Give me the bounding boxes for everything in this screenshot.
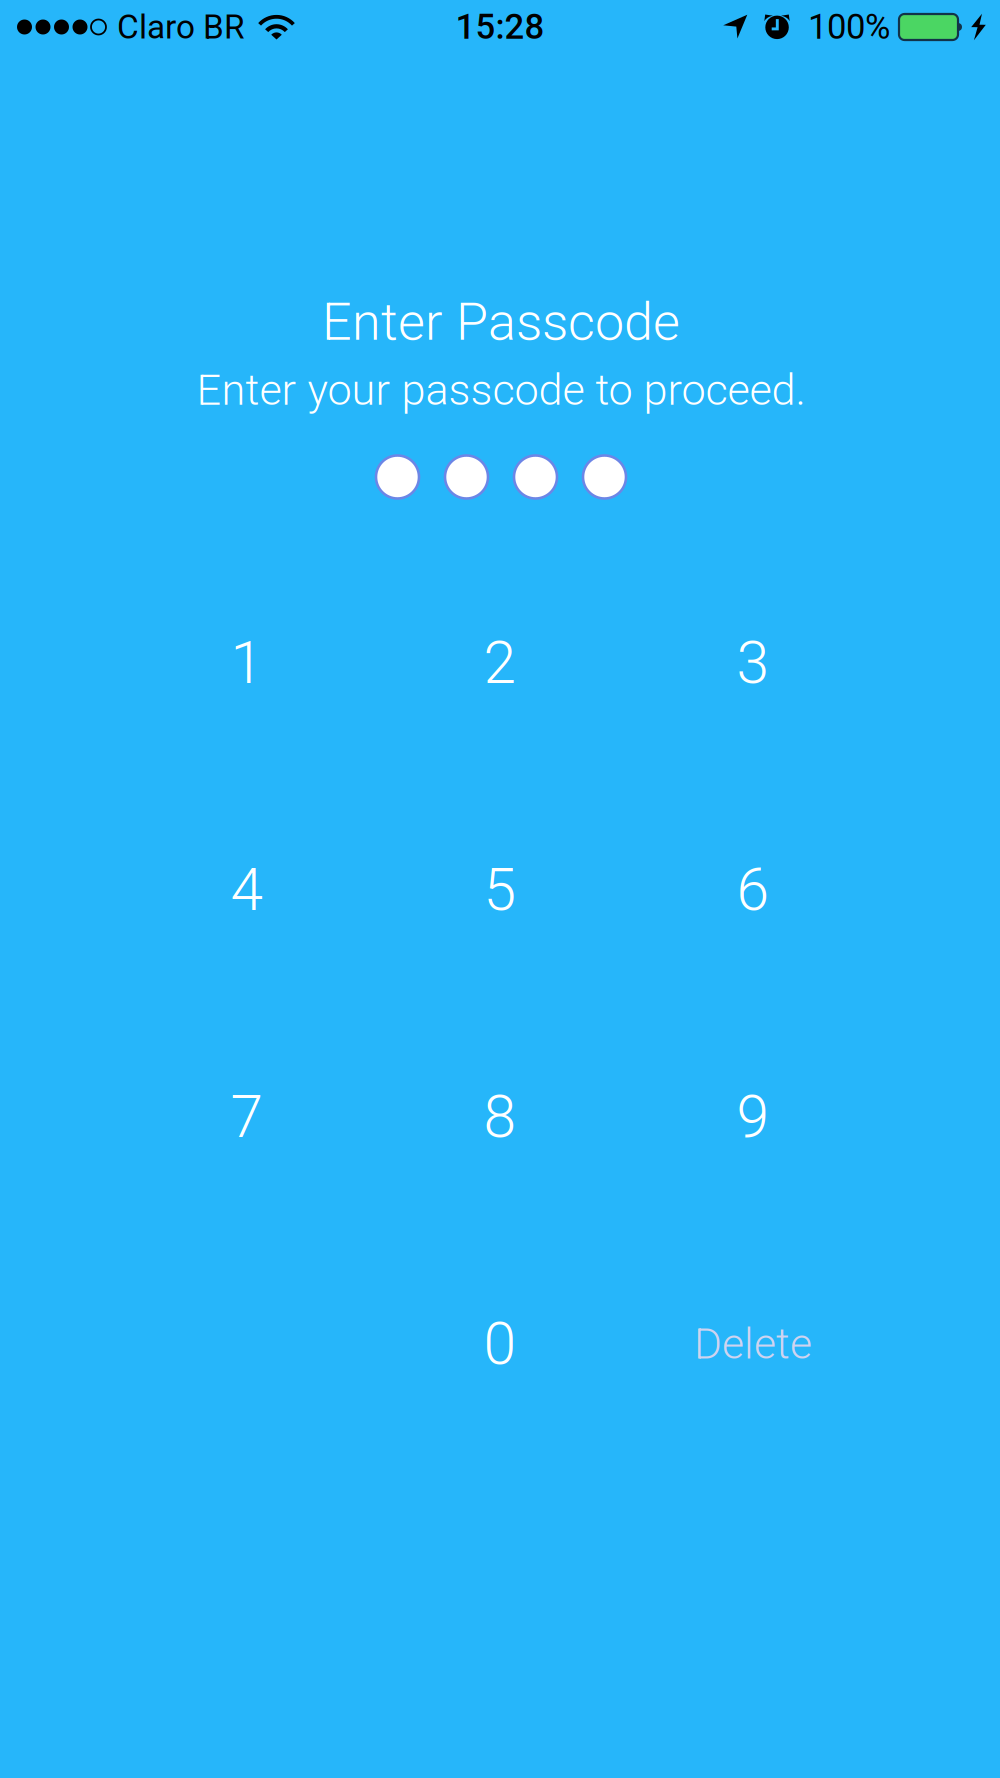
button[interactable]: 1 (120, 549, 373, 776)
staticText: 2 (483, 629, 516, 697)
button[interactable]: 2 (373, 549, 626, 776)
staticText: 0 (483, 1310, 516, 1378)
staticText: 100% (808, 7, 890, 47)
button[interactable]: Delete (626, 1230, 879, 1457)
button[interactable]: 7 (120, 1003, 373, 1230)
staticText: 6 (736, 856, 769, 924)
staticText: 7 (230, 1083, 263, 1151)
staticText: Enter Passcode (322, 291, 680, 352)
button[interactable]: 0 (373, 1230, 626, 1457)
button[interactable]: 9 (626, 1003, 879, 1230)
staticText: Enter your passcode to proceed. (196, 365, 805, 415)
button[interactable]: 5 (373, 776, 626, 1003)
staticText: 8 (483, 1083, 516, 1151)
button[interactable]: 6 (626, 776, 879, 1003)
staticText: Claro BR (117, 7, 245, 47)
staticText: 5 (483, 856, 516, 924)
staticText: Delete (694, 1319, 812, 1369)
staticText: 1 (230, 629, 263, 697)
staticText: 4 (230, 856, 263, 924)
button[interactable]: 3 (626, 549, 879, 776)
button[interactable]: 4 (120, 776, 373, 1003)
staticText: 9 (736, 1083, 769, 1151)
staticText: 15:28 (455, 7, 544, 47)
staticText: 3 (736, 629, 769, 697)
button[interactable]: 8 (373, 1003, 626, 1230)
